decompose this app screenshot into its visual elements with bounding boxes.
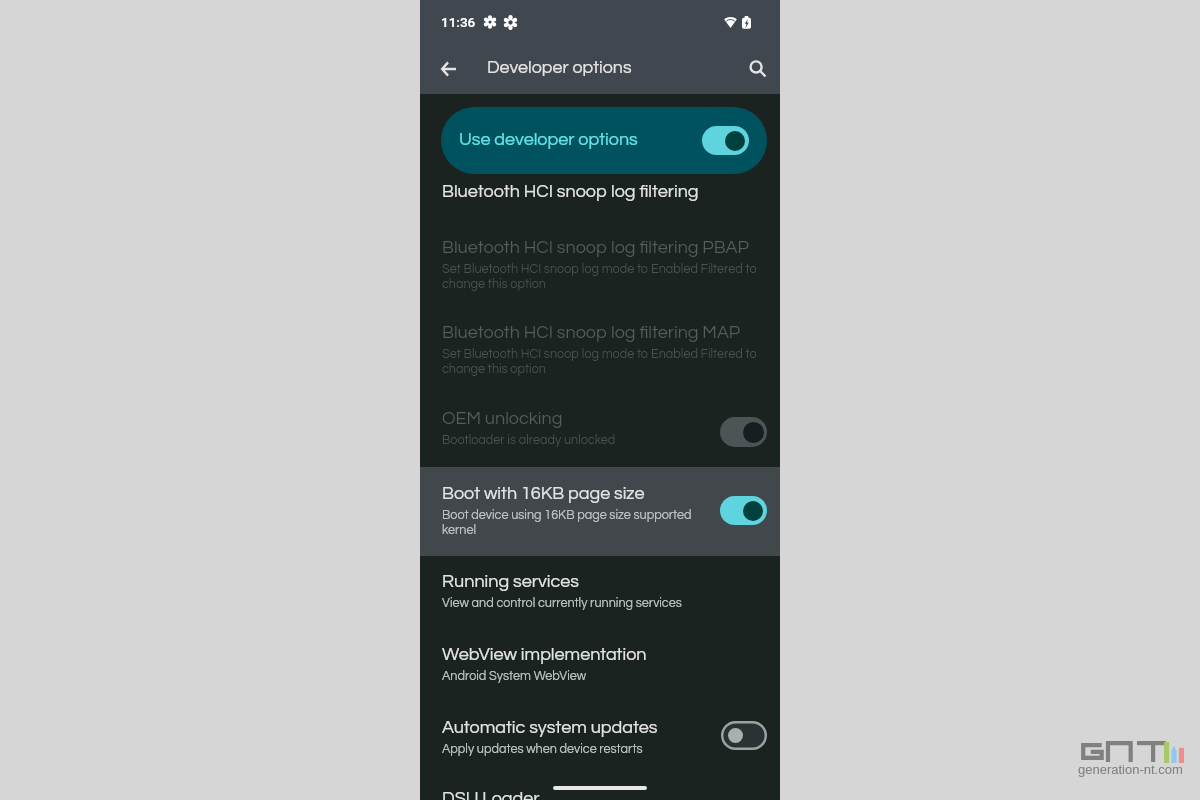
button[interactable]: Toggle disabled xyxy=(720,417,767,447)
button[interactable]: Running services xyxy=(420,572,780,645)
staticText: Bluetooth HCI snoop log filtering MAP xyxy=(442,323,741,342)
button[interactable]: Automatic system updates xyxy=(420,718,780,789)
staticText: Boot device using 16KB page size support… xyxy=(442,509,708,537)
staticText: Running services xyxy=(442,572,579,591)
staticText: Set Bluetooth HCI snoop log mode to Enab… xyxy=(442,263,759,291)
staticText: Automatic system updates xyxy=(442,718,658,737)
button[interactable]: DSU Loader xyxy=(420,789,780,800)
button[interactable]: Toggle on xyxy=(702,126,749,155)
staticText: WebView implementation xyxy=(442,645,647,664)
button[interactable]: Bluetooth HCI snoop log filtering PBAP xyxy=(420,238,780,323)
staticText: Developer options xyxy=(487,58,632,76)
button[interactable]: Back xyxy=(426,47,470,91)
button[interactable]: Boot with 16KB page size xyxy=(420,484,780,572)
staticText: Set Bluetooth HCI snoop log mode to Enab… xyxy=(442,348,759,376)
button[interactable]: Use developer options xyxy=(441,107,767,174)
staticText: Bluetooth HCI snoop log filtering PBAP xyxy=(442,238,749,257)
button[interactable]: Search xyxy=(736,47,780,91)
button[interactable]: Toggle off xyxy=(721,721,767,750)
button[interactable]: Toggle on xyxy=(720,496,767,525)
button[interactable]: OEM unlocking xyxy=(420,409,780,484)
staticText: DSU Loader xyxy=(442,789,540,800)
staticText: Bootloader is already unlocked xyxy=(442,434,616,447)
staticText: Apply updates when device restarts xyxy=(442,743,643,756)
button[interactable]: Bluetooth HCI snoop log filtering MAP xyxy=(420,323,780,409)
staticText: Boot with 16KB page size xyxy=(442,484,645,503)
staticText: OEM unlocking xyxy=(442,409,563,428)
staticText: generation-nt.com xyxy=(1078,762,1183,777)
staticText: 11:36 xyxy=(441,14,476,30)
staticText: Bluetooth HCI snoop log filtering xyxy=(442,182,699,201)
button[interactable]: WebView implementation xyxy=(420,645,780,718)
staticText: Android System WebView xyxy=(442,670,587,683)
button[interactable]: Bluetooth HCI snoop log filtering xyxy=(420,182,780,238)
staticText: Use developer options xyxy=(459,130,638,149)
staticText: View and control currently running servi… xyxy=(442,597,682,610)
